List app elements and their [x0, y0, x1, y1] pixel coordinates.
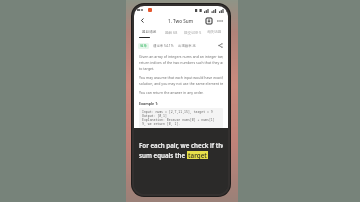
- button[interactable]: 提交记录 5: [182, 27, 204, 37]
- button[interactable]: Share: [217, 42, 224, 49]
- staticText: You may assume that each input would hav…: [139, 75, 223, 80]
- button[interactable]: Notes: [204, 16, 213, 25]
- button[interactable]: 简单: [140, 44, 147, 48]
- button[interactable]: More options: [215, 16, 224, 25]
- staticText: 题目描述: [142, 30, 157, 35]
- staticText: You can return the answer in any order.: [139, 90, 204, 95]
- button[interactable]: 题解 68: [160, 27, 182, 37]
- staticText: Example 1:: [139, 101, 159, 106]
- staticText: solution, and you may not use the same e…: [139, 81, 223, 86]
- staticText: 出现频率 高: [178, 43, 196, 48]
- staticText: 通过率 54.1%: [153, 43, 174, 48]
- staticText: Output: [0,1]: [142, 114, 167, 118]
- staticText: 简单: [140, 44, 147, 48]
- staticText: 1. Two Sum: [168, 18, 194, 24]
- staticText: For each pair, we check if their: [139, 141, 223, 149]
- staticText: Given an array of integers nums and an i…: [139, 54, 223, 59]
- button[interactable]: 题目描述: [138, 27, 160, 37]
- staticText: Explanation: Because nums[0] + nums[1] =…: [142, 118, 220, 122]
- staticText: 9, we return [0, 1].: [142, 122, 181, 126]
- button[interactable]: 相关话题: [204, 27, 224, 37]
- staticText: sum equals the: [139, 151, 187, 159]
- button[interactable]: Back: [138, 16, 147, 25]
- staticText: target: [188, 151, 207, 159]
- staticText: to target.: [139, 66, 155, 71]
- staticText: Input: nums = [2,7,11,15], target = 9: [142, 110, 213, 114]
- staticText: 题解 68: [165, 30, 178, 35]
- staticText: 提交记录 5: [184, 30, 202, 35]
- staticText: 相关话题: [207, 30, 222, 35]
- staticText: return indices of the two numbers such t…: [139, 60, 223, 65]
